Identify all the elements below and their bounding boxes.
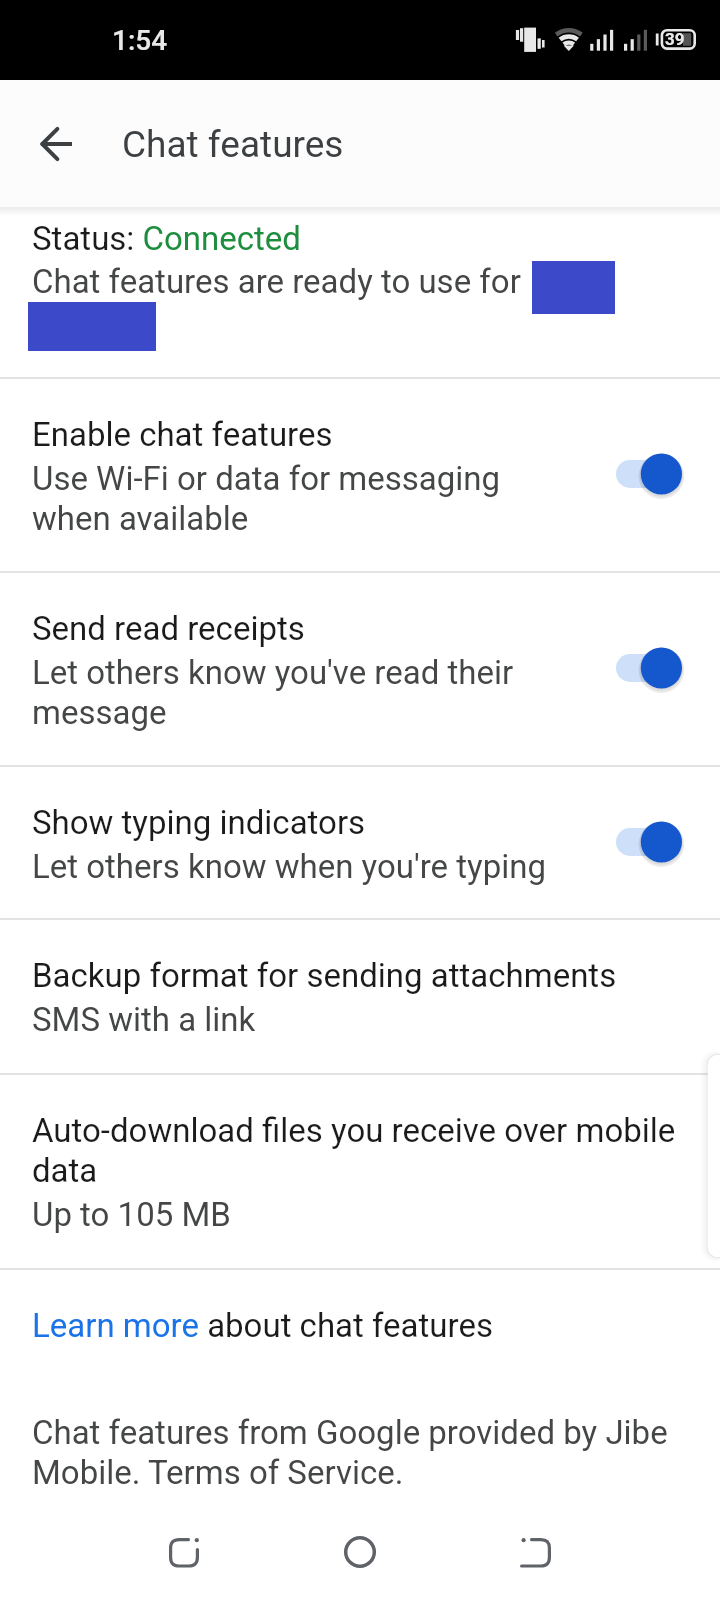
staticText: 39 [665, 29, 685, 49]
staticText: Chat features from Google provided by Ji… [32, 1413, 668, 1493]
staticText: Use Wi-Fi or data for messaging when ava… [32, 459, 501, 539]
button[interactable]: Learn more about chat features [32, 1306, 493, 1345]
staticText: Let others know you've read their messag… [32, 653, 514, 733]
button[interactable]: Navigate up [22, 110, 90, 178]
button[interactable]: Home [320, 1512, 400, 1592]
staticText: Send read receipts [32, 609, 305, 648]
button[interactable]: On [616, 820, 682, 864]
staticText: Status: Connected [32, 219, 301, 258]
staticText: Enable chat features [32, 415, 333, 454]
staticText: 1:54 [112, 24, 168, 57]
button[interactable]: Auto-download files you receive over mob… [0, 1075, 720, 1268]
button[interactable]: On [616, 452, 682, 496]
staticText: Up to 105 MB [32, 1195, 231, 1234]
button[interactable]: Enable chat features [0, 379, 720, 571]
button[interactable]: Status: Connected [0, 207, 720, 377]
button[interactable]: Back [496, 1512, 576, 1592]
button[interactable]: Recent apps [144, 1512, 224, 1592]
staticText: Let others know when you're typing [32, 847, 547, 886]
staticText: Auto-download files you receive over mob… [32, 1111, 676, 1190]
staticText: SMS with a link [32, 1000, 256, 1039]
button[interactable]: Send read receipts [0, 573, 720, 765]
button[interactable]: Backup format for sending attachments [0, 920, 720, 1073]
staticText: Backup format for sending attachments [32, 956, 617, 995]
staticText: Chat features are ready to use for [32, 262, 521, 301]
button[interactable]: On [616, 646, 682, 690]
staticText: Chat features [122, 123, 344, 166]
button[interactable]: Show typing indicators [0, 767, 720, 918]
staticText: Show typing indicators [32, 803, 366, 842]
